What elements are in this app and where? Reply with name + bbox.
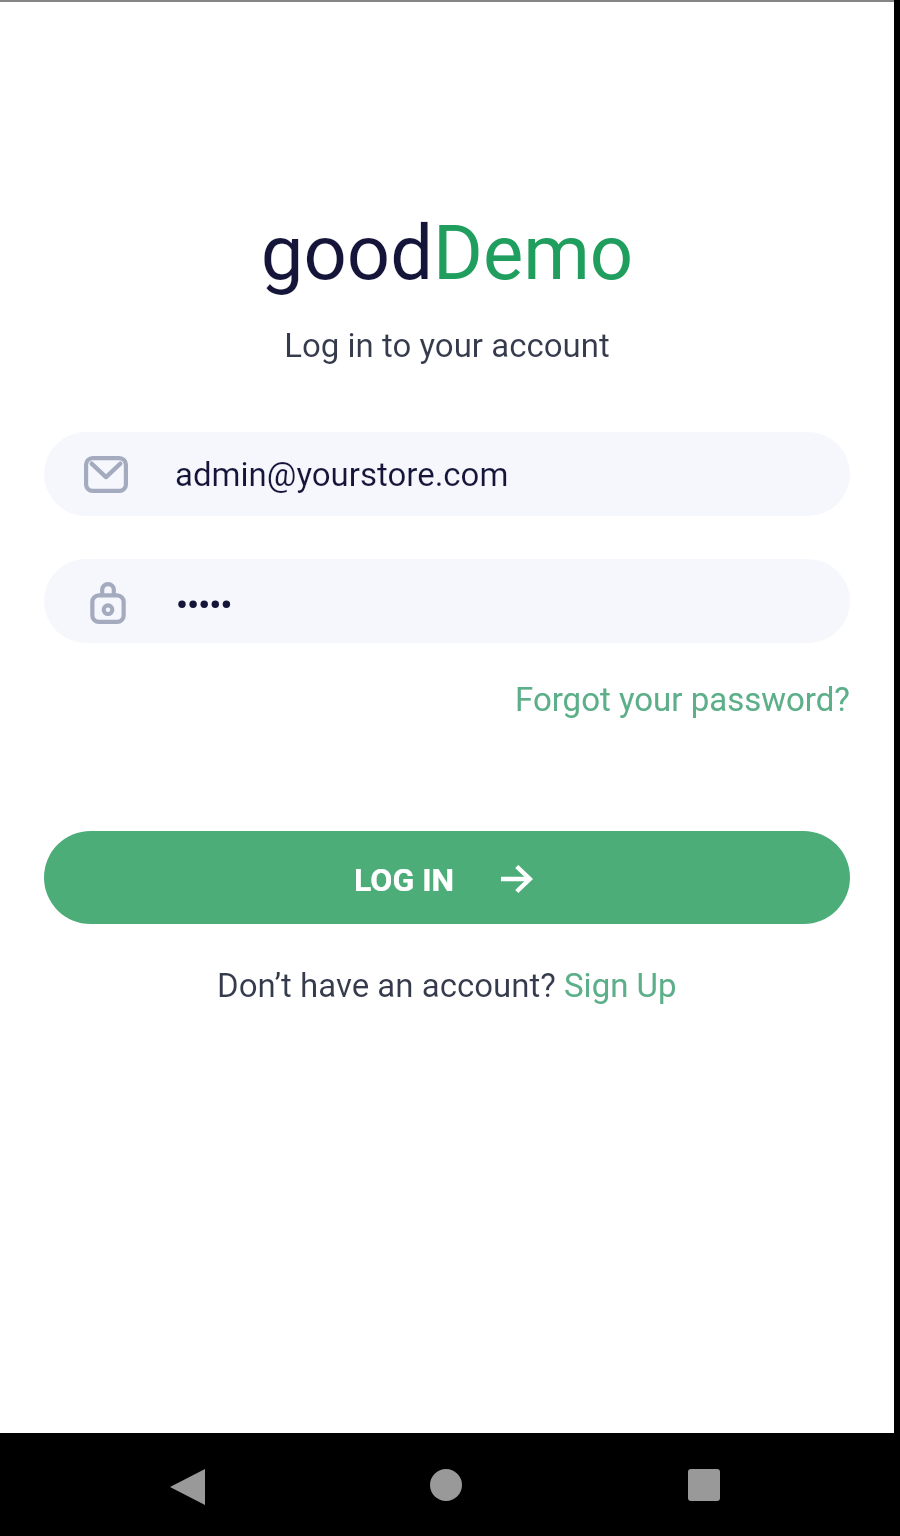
staticText: admin@yourstore.com — [175, 455, 509, 494]
button[interactable]: Password field — [44, 559, 850, 643]
staticText: LOG IN — [354, 861, 455, 899]
other: Password — [86, 582, 130, 624]
button[interactable]: Back — [170, 1469, 205, 1505]
staticText: Don’t have an account? Sign Up — [217, 966, 677, 1005]
button[interactable]: Email address field — [44, 432, 850, 516]
button[interactable]: Don’t have an account? Sign Up — [217, 966, 677, 1005]
staticText: Log in to your account — [0, 326, 894, 365]
button[interactable]: Recent apps — [688, 1469, 720, 1501]
button[interactable]: Home — [430, 1469, 462, 1501]
staticText: Forgot your password? — [515, 680, 850, 719]
button[interactable]: Forgot your password? — [515, 680, 850, 719]
button[interactable]: LOG IN — [44, 831, 850, 924]
staticText: goodDemo — [0, 208, 894, 297]
other: Email — [84, 456, 128, 493]
